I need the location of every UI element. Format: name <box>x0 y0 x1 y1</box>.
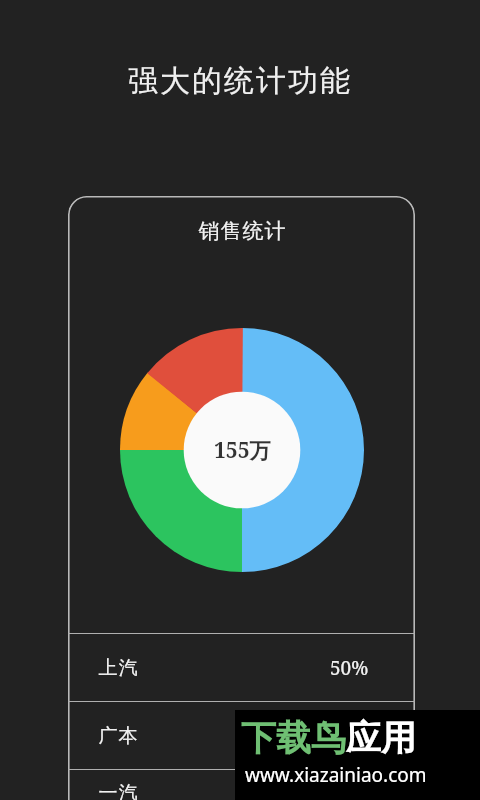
button[interactable]: 销售统计 <box>68 196 415 800</box>
staticText: 一汽 <box>98 781 138 800</box>
staticText: www.xiazainiao.com <box>245 762 427 788</box>
button[interactable]: 上汽 <box>68 634 415 701</box>
button[interactable]: 广本 <box>68 702 415 769</box>
button[interactable]: 一汽 <box>68 770 415 800</box>
staticText: 上汽 <box>98 656 138 680</box>
staticText: 销售统计 <box>198 218 286 244</box>
staticText: 强大的统计功能 <box>0 62 480 100</box>
staticText: 应用 <box>346 716 416 760</box>
staticText: 50% <box>330 655 369 681</box>
staticText: 广本 <box>98 724 138 748</box>
staticText: 下载鸟 <box>241 716 346 760</box>
staticText: 155万 <box>214 436 271 465</box>
